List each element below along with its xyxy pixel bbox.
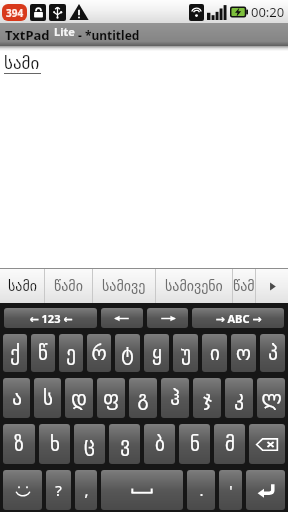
staticText: '	[229, 480, 233, 500]
staticText: სამი	[8, 278, 37, 294]
button[interactable]: → ABC →	[192, 308, 284, 328]
button[interactable]: დ	[65, 378, 93, 418]
button[interactable]: წამი	[45, 269, 92, 303]
button[interactable]: ც	[74, 424, 105, 464]
button[interactable]: Move right	[147, 308, 188, 328]
button[interactable]: ნ	[179, 424, 210, 464]
staticText: ზ	[14, 433, 24, 455]
staticText: უ	[181, 342, 191, 364]
button[interactable]: წ	[31, 334, 55, 372]
staticText: ნ	[190, 433, 200, 455]
button[interactable]: ტ	[115, 334, 140, 372]
staticText: ჯ	[203, 387, 212, 409]
button[interactable]: More suggestions	[256, 269, 288, 303]
staticText: წამი	[54, 278, 83, 294]
staticText: სამივენი	[165, 278, 223, 294]
button[interactable]: Backspace	[249, 424, 285, 464]
button[interactable]: Emoji	[3, 470, 42, 510]
button[interactable]: ე	[59, 334, 83, 372]
button[interactable]: სამივე	[93, 269, 155, 303]
staticText: წ	[38, 342, 48, 364]
staticText: ი	[210, 342, 220, 364]
button[interactable]: მ	[214, 424, 245, 464]
button[interactable]: ქ	[3, 334, 27, 372]
button[interactable]: '	[219, 470, 242, 510]
staticText: ე	[66, 342, 76, 364]
button[interactable]: ჯ	[193, 378, 221, 418]
button[interactable]: სამი	[0, 269, 44, 303]
button[interactable]: Space	[101, 470, 183, 510]
button[interactable]: ვ	[109, 424, 140, 464]
staticText: ← 123 ←	[29, 311, 73, 326]
button[interactable]: ბ	[144, 424, 175, 464]
button[interactable]: უ	[173, 334, 198, 372]
staticText: ვ	[120, 433, 130, 455]
staticText: .	[199, 480, 204, 500]
staticText: ,	[84, 480, 89, 500]
staticText: ო	[236, 342, 251, 364]
staticText: გ	[137, 387, 149, 409]
button[interactable]: ყ	[144, 334, 169, 372]
staticText: ქ	[10, 342, 20, 364]
button[interactable]: Move left	[101, 308, 143, 328]
staticText: წამ	[233, 278, 255, 294]
staticText: TxtPad	[5, 26, 50, 44]
button[interactable]: პ	[260, 334, 285, 372]
staticText: ტ	[121, 342, 134, 364]
button[interactable]: ა	[3, 378, 30, 418]
staticText: 394	[6, 6, 24, 20]
button[interactable]: Enter	[246, 470, 285, 510]
staticText: - *untitled	[78, 27, 140, 43]
button[interactable]: ლ	[257, 378, 285, 418]
staticText: რ	[91, 342, 107, 364]
button[interactable]: ?	[46, 470, 71, 510]
button[interactable]: სამივენი	[156, 269, 232, 303]
staticText: ა	[12, 387, 22, 409]
staticText: ჰ	[170, 387, 180, 409]
button[interactable]: ზ	[3, 424, 35, 464]
staticText: ყ	[152, 342, 162, 364]
staticText: სამივე	[102, 278, 146, 294]
button[interactable]: გ	[129, 378, 157, 418]
button[interactable]: ი	[202, 334, 227, 372]
staticText: მ	[225, 433, 235, 455]
staticText: ?	[55, 480, 62, 500]
button[interactable]: ,	[75, 470, 97, 510]
staticText: ბ	[155, 433, 165, 455]
staticText: ფ	[103, 387, 119, 409]
button[interactable]: კ	[225, 378, 253, 418]
staticText: ს	[43, 387, 53, 409]
staticText: პ	[268, 342, 278, 364]
button[interactable]: ← 123 ←	[4, 308, 97, 328]
button[interactable]: რ	[87, 334, 111, 372]
button[interactable]: ფ	[97, 378, 125, 418]
staticText: დ	[71, 387, 87, 409]
staticText: ც	[84, 433, 95, 455]
button[interactable]: ს	[34, 378, 61, 418]
button[interactable]: წამ	[233, 269, 255, 303]
staticText: კ	[234, 387, 244, 409]
staticText: სამი	[4, 53, 40, 73]
staticText: → ABC →	[215, 311, 262, 326]
staticText: 00:20	[251, 3, 285, 21]
button[interactable]: ჰ	[161, 378, 189, 418]
button[interactable]: ხ	[39, 424, 70, 464]
staticText: ლ	[261, 387, 282, 409]
button[interactable]: ო	[231, 334, 256, 372]
staticText: Lite	[54, 24, 75, 39]
staticText: ხ	[50, 433, 60, 455]
button[interactable]: .	[187, 470, 215, 510]
